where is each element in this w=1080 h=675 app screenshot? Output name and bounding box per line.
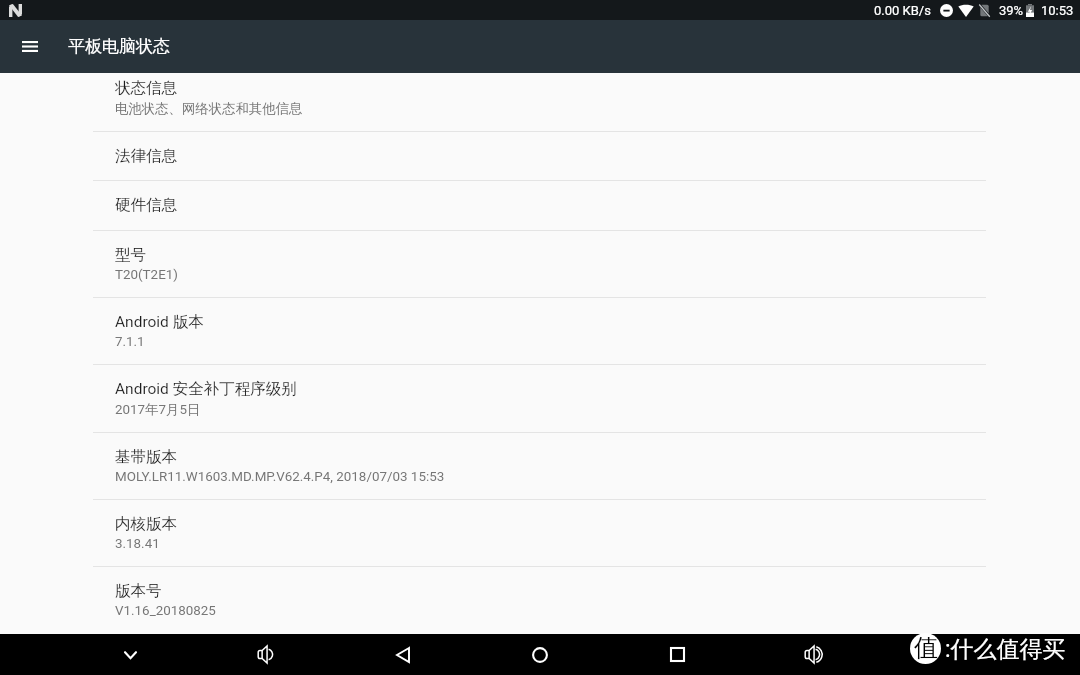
- button[interactable]: 硬件信息: [0, 181, 1080, 229]
- staticText: 基带版本: [115, 447, 177, 467]
- staticText: V1.16_20180825: [115, 603, 216, 619]
- staticText: 值: [914, 633, 938, 663]
- staticText: 0.00 KB/s: [874, 3, 931, 18]
- staticText: 平板电脑状态: [68, 36, 170, 57]
- staticText: 2017年7月5日: [115, 401, 201, 418]
- button[interactable]: Volume down: [242, 634, 290, 675]
- button[interactable]: Android 版本: [0, 298, 1080, 364]
- staticText: :什么值得买: [945, 635, 1066, 664]
- staticText: 硬件信息: [115, 195, 177, 215]
- button[interactable]: 型号: [0, 231, 1080, 297]
- button[interactable]: 版本号: [0, 567, 1080, 633]
- button[interactable]: 基带版本: [0, 433, 1080, 499]
- button[interactable]: Hide keyboard: [106, 634, 154, 675]
- staticText: 法律信息: [115, 146, 177, 166]
- staticText: 状态信息: [115, 78, 177, 98]
- staticText: 版本号: [115, 581, 162, 601]
- button[interactable]: 法律信息: [0, 132, 1080, 180]
- staticText: 内核版本: [115, 514, 177, 534]
- staticText: T20(T2E1): [115, 267, 178, 283]
- staticText: 39%: [999, 3, 1024, 18]
- button[interactable]: Android 安全补丁程序级别: [0, 365, 1080, 431]
- button[interactable]: 内核版本: [0, 500, 1080, 566]
- button[interactable]: 状态信息: [0, 73, 1080, 130]
- button[interactable]: Home: [516, 634, 564, 675]
- staticText: 7.1.1: [115, 334, 145, 350]
- staticText: 3.18.41: [115, 536, 160, 552]
- button[interactable]: Recent apps: [653, 634, 701, 675]
- button[interactable]: Open navigation menu: [6, 20, 54, 73]
- staticText: 电池状态、网络状态和其他信息: [115, 100, 303, 117]
- staticText: Android 安全补丁程序级别: [115, 379, 297, 399]
- button[interactable]: Back: [379, 634, 427, 675]
- staticText: 型号: [115, 245, 146, 265]
- staticText: 10:53: [1041, 3, 1074, 18]
- staticText: MOLY.LR11.W1603.MD.MP.V62.4.P4, 2018/07/…: [115, 469, 445, 485]
- button[interactable]: Volume up: [789, 634, 837, 675]
- staticText: Android 版本: [115, 312, 204, 332]
